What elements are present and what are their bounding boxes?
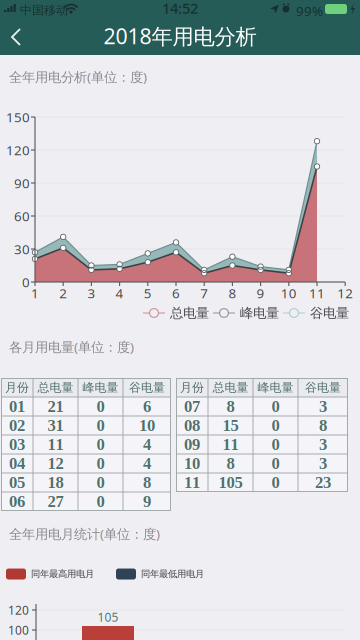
staticText: 3 [319,435,327,454]
staticText: 60 [14,207,30,225]
staticText: 0 [271,416,279,435]
staticText: 105 [218,473,242,492]
staticText: 11 [309,284,325,302]
staticText: 各月用电量(单位：度) [9,338,134,356]
staticText: 11 [184,473,200,492]
staticText: 12 [47,454,63,473]
staticText: 0 [96,492,104,511]
staticText: 04 [9,454,25,473]
staticText: 峰电量 [257,380,293,395]
staticText: 8 [228,284,236,302]
staticText: 08 [184,416,200,435]
staticText: 31 [47,416,63,435]
staticText: 6 [172,284,180,302]
staticText: 8 [143,473,151,492]
staticText: 8 [226,454,234,473]
staticText: 0 [271,454,279,473]
staticText: 5 [144,284,152,302]
staticText: 9 [143,492,151,511]
staticText: 0 [96,397,104,416]
staticText: 18 [47,473,63,492]
staticText: 谷电量 [305,380,341,395]
staticText: 0 [271,473,279,492]
staticText: 月份 [180,380,204,395]
staticText: 峰电量 [82,380,118,395]
staticText: 0 [96,454,104,473]
staticText: 90 [14,174,30,192]
staticText: 1 [31,284,39,302]
staticText: 总电量 [170,305,209,321]
staticText: 120 [8,602,29,618]
staticText: 23 [315,473,331,492]
staticText: 2 [59,284,67,302]
staticText: 4 [143,435,151,454]
staticText: 8 [226,397,234,416]
staticText: 07 [184,397,200,416]
staticText: 同年最低用电月 [141,568,204,580]
staticText: 06 [9,492,25,511]
staticText: 全年用电月统计(单位：度) [9,525,160,543]
staticText: 3 [319,454,327,473]
staticText: 4 [143,454,151,473]
staticText: 0 [96,416,104,435]
staticText: 0 [271,397,279,416]
staticText: 谷电量 [129,380,165,395]
staticText: 27 [47,492,63,511]
staticText: 02 [9,416,25,435]
staticText: 11 [222,435,238,454]
staticText: 14:52 [162,0,198,18]
staticText: 月份 [5,380,29,395]
staticText: 全年用电分析(单位：度) [9,68,147,86]
staticText: 12 [337,284,353,302]
staticText: 7 [200,284,208,302]
staticText: 05 [9,473,25,492]
staticText: 99% [296,2,323,20]
staticText: 3 [319,397,327,416]
staticText: 0 [96,435,104,454]
staticText: 21 [47,397,63,416]
staticText: 01 [9,397,25,416]
staticText: 150 [6,108,30,126]
staticText: 30 [14,240,30,258]
staticText: 峰电量 [240,305,279,321]
staticText: 9 [257,284,265,302]
staticText: 10 [139,416,155,435]
staticText: 4 [116,284,124,302]
staticText: 11 [47,435,63,454]
staticText: 总电量 [212,380,248,395]
staticText: 0 [96,473,104,492]
staticText: 0 [271,435,279,454]
staticText: 120 [6,141,30,159]
staticText: 100 [8,622,29,638]
staticText: 谷电量 [310,305,349,321]
staticText: 10 [184,454,200,473]
staticText: 09 [184,435,200,454]
staticText: 8 [319,416,327,435]
staticText: 同年最高用电月 [31,568,94,580]
staticText: 6 [143,397,151,416]
staticText: 中国移动 [20,3,68,18]
staticText: 0 [22,273,30,291]
staticText: 03 [9,435,25,454]
staticText: 2018年用电分析 [103,22,256,50]
button[interactable]: Back [8,21,42,53]
staticText: 10 [281,284,297,302]
staticText: 总电量 [37,380,73,395]
staticText: 15 [222,416,238,435]
staticText: 105 [97,609,118,625]
staticText: 3 [87,284,95,302]
